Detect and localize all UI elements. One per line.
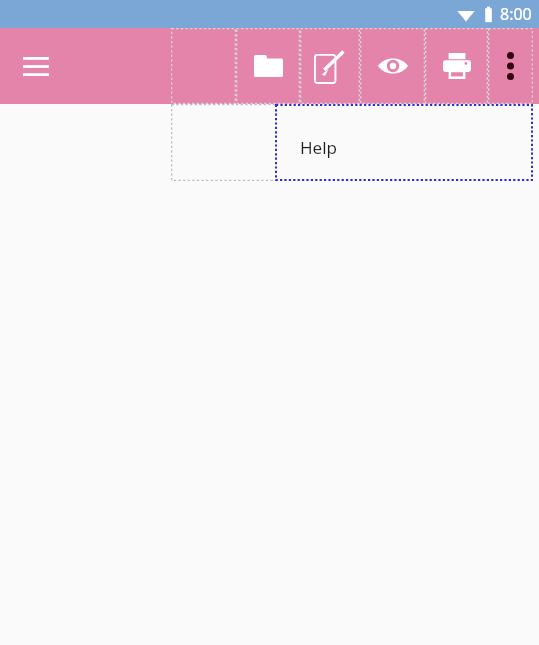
- button[interactable]: Empty: [171, 28, 236, 104]
- button[interactable]: Edit: [300, 28, 360, 104]
- button[interactable]: Menu item: [171, 104, 277, 181]
- button[interactable]: More options: [488, 28, 533, 104]
- staticText: 8:00: [500, 3, 532, 25]
- button[interactable]: Preview: [360, 28, 425, 104]
- button[interactable]: Help: [275, 104, 533, 181]
- staticText: Help: [300, 136, 338, 159]
- button[interactable]: Navigation menu: [14, 44, 58, 88]
- button[interactable]: Print: [425, 28, 488, 104]
- button[interactable]: Open folder: [236, 28, 300, 104]
